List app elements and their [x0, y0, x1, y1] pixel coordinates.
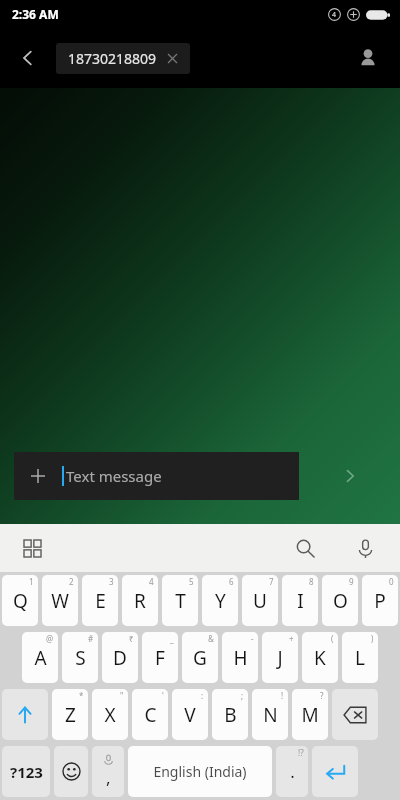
button[interactable]: P: [362, 575, 398, 626]
staticText: ': [162, 690, 164, 701]
button[interactable]: L: [342, 632, 378, 683]
staticText: 3: [109, 576, 114, 587]
staticText: *: [79, 690, 84, 701]
button[interactable]: .: [276, 746, 308, 797]
button[interactable]: Contact details: [346, 36, 390, 80]
button[interactable]: T: [162, 575, 198, 626]
staticText: R: [134, 588, 146, 614]
button[interactable]: Voice input: [348, 531, 382, 565]
staticText: 0: [389, 576, 394, 587]
staticText: H: [233, 645, 248, 671]
staticText: N: [263, 702, 278, 728]
staticText: !?: [298, 747, 304, 758]
staticText: 2:36 AM: [12, 6, 59, 22]
button[interactable]: Toolbar menu: [14, 530, 50, 566]
staticText: ?123: [10, 762, 43, 782]
staticText: D: [113, 645, 127, 671]
staticText: I: [297, 588, 304, 614]
button[interactable]: S: [62, 632, 98, 683]
button[interactable]: W: [42, 575, 78, 626]
staticText: 9: [349, 576, 354, 587]
staticText: (: [331, 633, 334, 644]
staticText: .: [290, 760, 295, 783]
button[interactable]: R: [122, 575, 158, 626]
staticText: V: [184, 702, 196, 728]
staticText: #: [88, 633, 94, 644]
button[interactable]: N: [252, 689, 288, 740]
button[interactable]: [54, 746, 88, 797]
staticText: _: [170, 633, 174, 644]
staticText: S: [75, 645, 86, 671]
button[interactable]: B: [212, 689, 248, 740]
button[interactable]: ,: [92, 746, 124, 797]
staticText: 18730218809: [68, 49, 157, 68]
staticText: O: [333, 588, 348, 614]
button[interactable]: K: [302, 632, 338, 683]
staticText: G: [193, 645, 207, 671]
staticText: ): [371, 633, 374, 644]
staticText: Z: [65, 702, 76, 728]
staticText: 5: [189, 576, 194, 587]
staticText: K: [314, 645, 326, 671]
button[interactable]: H: [222, 632, 258, 683]
button[interactable]: D: [102, 632, 138, 683]
staticText: ;: [241, 690, 244, 701]
button[interactable]: [312, 746, 358, 797]
button[interactable]: U: [242, 575, 278, 626]
button[interactable]: Send: [299, 452, 400, 500]
staticText: Q: [13, 588, 28, 614]
staticText: X: [104, 702, 116, 728]
button[interactable]: J: [262, 632, 298, 683]
staticText: Y: [215, 588, 226, 614]
button[interactable]: E: [82, 575, 118, 626]
staticText: !: [281, 690, 284, 701]
button[interactable]: X: [92, 689, 128, 740]
staticText: :: [201, 690, 204, 701]
staticText: ": [120, 690, 124, 701]
button[interactable]: V: [172, 689, 208, 740]
button[interactable]: C: [132, 689, 168, 740]
button[interactable]: G: [182, 632, 218, 683]
staticText: ,: [106, 766, 111, 789]
staticText: E: [95, 588, 106, 614]
staticText: 6: [229, 576, 234, 587]
button[interactable]: Search: [288, 531, 322, 565]
button[interactable]: Text message: [14, 452, 299, 500]
staticText: ₹: [129, 633, 134, 644]
staticText: T: [175, 588, 186, 614]
staticText: +: [289, 633, 294, 644]
button[interactable]: M: [292, 689, 328, 740]
staticText: 4: [332, 10, 337, 20]
staticText: 8: [309, 576, 314, 587]
staticText: -: [251, 633, 254, 644]
button[interactable]: ?123: [2, 746, 50, 797]
button[interactable]: A: [22, 632, 58, 683]
staticText: 1: [29, 576, 34, 587]
staticText: A: [34, 645, 47, 671]
staticText: Text message: [66, 466, 162, 486]
button[interactable]: Y: [202, 575, 238, 626]
button[interactable]: O: [322, 575, 358, 626]
button[interactable]: [332, 689, 378, 740]
button[interactable]: Q: [2, 575, 38, 626]
staticText: C: [144, 702, 157, 728]
button[interactable]: 18730218809: [56, 43, 190, 74]
staticText: F: [155, 645, 165, 671]
button[interactable]: Back: [6, 36, 50, 80]
button[interactable]: F: [142, 632, 178, 683]
staticText: 7: [269, 576, 274, 587]
staticText: J: [277, 645, 283, 671]
button[interactable]: Z: [52, 689, 88, 740]
button[interactable]: English (India): [128, 746, 272, 797]
staticText: 2: [69, 576, 74, 587]
staticText: W: [51, 588, 69, 614]
staticText: English (India): [153, 762, 247, 781]
button[interactable]: [2, 689, 48, 740]
button[interactable]: I: [282, 575, 318, 626]
staticText: L: [355, 645, 365, 671]
staticText: M: [301, 702, 319, 728]
staticText: &: [208, 633, 214, 644]
staticText: ?: [320, 690, 324, 701]
staticText: @: [46, 633, 54, 644]
